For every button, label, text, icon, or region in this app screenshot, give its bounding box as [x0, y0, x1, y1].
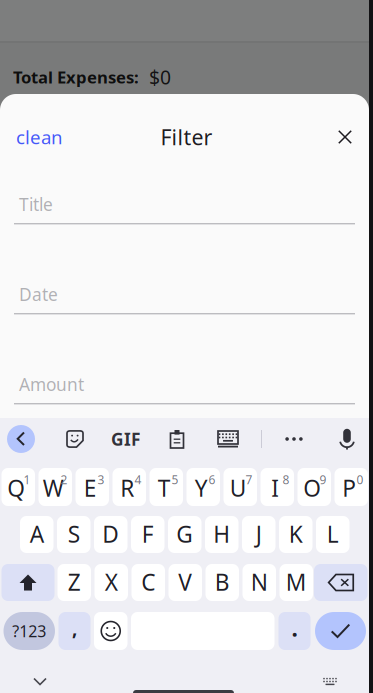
button[interactable]: I [260, 468, 294, 506]
staticText: 8 [282, 471, 289, 488]
staticText: D [102, 519, 119, 549]
staticText: J [256, 519, 262, 549]
staticText: Total Expenses: [13, 66, 139, 88]
button[interactable]: Y [186, 468, 220, 506]
staticText: GIF [111, 427, 141, 451]
button[interactable]: Z [57, 564, 91, 601]
staticText: Y [195, 473, 208, 503]
button[interactable]: T [149, 468, 183, 506]
staticText: ?123 [12, 620, 46, 642]
button[interactable]: D [94, 516, 127, 553]
staticText: L [327, 519, 339, 549]
staticText: clean [16, 124, 63, 150]
button[interactable]: P [334, 468, 368, 506]
button[interactable]: N [242, 564, 276, 601]
button[interactable]: Clipboard [158, 421, 196, 457]
staticText: 7 [245, 471, 252, 488]
button[interactable]: Hide keyboard [22, 663, 58, 693]
staticText: P [342, 473, 356, 503]
button[interactable]: L [316, 516, 349, 553]
button[interactable]: C [131, 564, 165, 601]
staticText: Date [19, 282, 58, 304]
button[interactable]: clean [6, 120, 76, 154]
button[interactable]: B [205, 564, 239, 601]
button[interactable]: Close [327, 119, 363, 155]
staticText: U [230, 473, 247, 503]
button[interactable]: G [168, 516, 201, 553]
staticText: T [158, 473, 171, 503]
staticText: 6 [208, 471, 215, 488]
button[interactable]: Voice input [328, 421, 366, 457]
button[interactable]: H [205, 516, 238, 553]
button[interactable]: E [75, 468, 109, 506]
staticText: I [271, 473, 279, 503]
staticText: 5 [171, 471, 178, 488]
button[interactable]: U [223, 468, 257, 506]
button[interactable]: A [20, 516, 53, 553]
button[interactable]: Stickers [56, 421, 94, 457]
staticText: . [291, 613, 297, 643]
button[interactable]: Enter [315, 612, 366, 650]
staticText: A [30, 519, 44, 549]
staticText: Amount [19, 372, 84, 394]
button[interactable]: V [168, 564, 202, 601]
button[interactable]: Switch keyboard [312, 663, 348, 693]
button[interactable]: F [131, 516, 164, 553]
staticText: R [120, 473, 134, 503]
button[interactable]: Shift [1, 564, 54, 601]
button[interactable]: S [57, 516, 90, 553]
staticText: 3 [97, 471, 104, 488]
staticText: 9 [319, 471, 326, 488]
button[interactable]: Comma [58, 612, 90, 650]
staticText: , [72, 615, 77, 641]
button[interactable]: R [112, 468, 146, 506]
staticText: V [178, 567, 192, 597]
staticText: X [105, 567, 118, 597]
staticText: C [141, 567, 155, 597]
staticText: W [43, 473, 64, 503]
staticText: M [286, 567, 307, 597]
button[interactable]: X [94, 564, 128, 601]
button[interactable]: Period [278, 612, 310, 650]
button[interactable]: Backspace [314, 564, 367, 601]
staticText: Z [68, 567, 81, 597]
staticText: G [176, 519, 193, 549]
button[interactable]: Back [3, 421, 39, 457]
button[interactable]: GIF [106, 421, 146, 457]
staticText: Q [7, 473, 25, 503]
staticText: O [303, 473, 321, 503]
staticText: E [84, 473, 97, 503]
button[interactable]: Keyboard settings [209, 421, 247, 457]
staticText: 4 [134, 471, 141, 488]
staticText: B [215, 567, 230, 597]
staticText: H [213, 519, 230, 549]
staticText: 2 [60, 471, 67, 488]
button[interactable]: O [297, 468, 331, 506]
button[interactable]: Symbols [3, 612, 55, 650]
button[interactable]: J [242, 516, 275, 553]
staticText: 1 [23, 471, 30, 488]
staticText: K [289, 519, 303, 549]
staticText: 0 [356, 471, 363, 488]
button[interactable]: Emoji [94, 612, 127, 650]
staticText: F [142, 519, 154, 549]
button[interactable]: K [279, 516, 312, 553]
staticText: Title [19, 192, 53, 214]
button[interactable]: More options [275, 421, 313, 457]
button[interactable]: W [38, 468, 72, 506]
staticText: $0 [149, 64, 171, 90]
staticText: Filter [160, 122, 212, 152]
staticText: S [68, 519, 80, 549]
staticText: N [251, 567, 268, 597]
button[interactable]: Q [1, 468, 35, 506]
button[interactable]: M [279, 564, 313, 601]
